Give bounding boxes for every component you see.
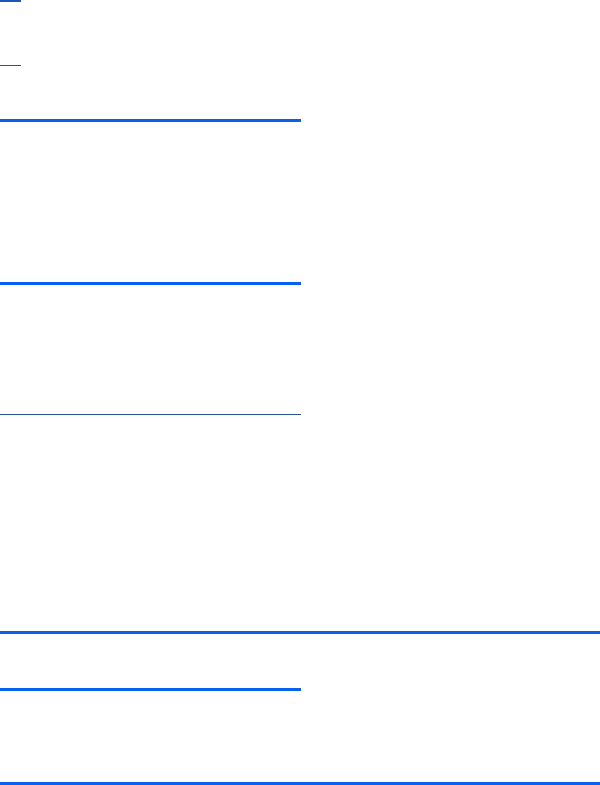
- button[interactable]: Footer action: [0, 688, 600, 691]
- other: Status bar: [0, 0, 600, 2]
- button[interactable]: Open first item: [0, 119, 600, 122]
- button[interactable]: Open second item: [0, 282, 600, 285]
- button[interactable]: Navigate up: [0, 2, 21, 66]
- button[interactable]: Open third item: [0, 414, 600, 415]
